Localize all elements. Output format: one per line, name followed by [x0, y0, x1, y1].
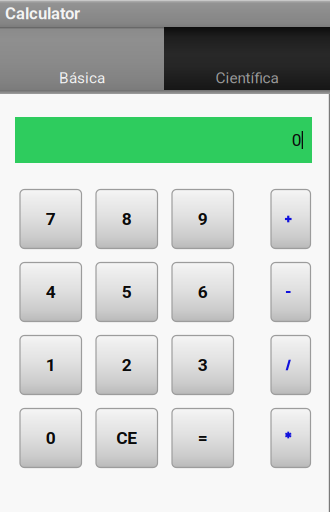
button[interactable]: 6 — [172, 262, 233, 321]
button[interactable]: 2 — [96, 335, 157, 394]
staticText: 4 — [46, 282, 56, 302]
staticText: 8 — [122, 209, 132, 229]
button[interactable]: Multiply — [271, 408, 310, 467]
button[interactable]: Minus — [271, 262, 310, 321]
staticText: 9 — [198, 209, 208, 229]
button[interactable]: 9 — [172, 189, 233, 248]
staticText: 2 — [122, 355, 132, 375]
staticText: 1 — [46, 355, 56, 375]
staticText: 3 — [198, 355, 208, 375]
button[interactable]: Básica — [0, 27, 164, 90]
button[interactable]: 0 — [20, 408, 81, 467]
button[interactable]: Plus — [271, 189, 310, 248]
staticText: 0 — [46, 428, 56, 448]
button[interactable]: 4 — [20, 262, 81, 321]
button[interactable]: 7 — [20, 189, 81, 248]
button[interactable]: CE — [96, 408, 157, 467]
button[interactable]: 3 — [172, 335, 233, 394]
button[interactable]: 1 — [20, 335, 81, 394]
staticText: 5 — [122, 282, 132, 302]
button[interactable]: 8 — [96, 189, 157, 248]
staticText: = — [198, 428, 208, 448]
button[interactable]: 5 — [96, 262, 157, 321]
button[interactable]: Divide — [271, 335, 310, 394]
staticText: Básica — [59, 69, 105, 87]
staticText: 6 — [198, 282, 208, 302]
staticText: 7 — [46, 209, 56, 229]
button[interactable]: = — [172, 408, 233, 467]
staticText: CE — [116, 428, 137, 448]
button[interactable]: Científica — [164, 27, 330, 90]
staticText: Calculator — [5, 4, 80, 23]
staticText: 0 — [292, 130, 302, 150]
staticText: Científica — [215, 69, 278, 87]
